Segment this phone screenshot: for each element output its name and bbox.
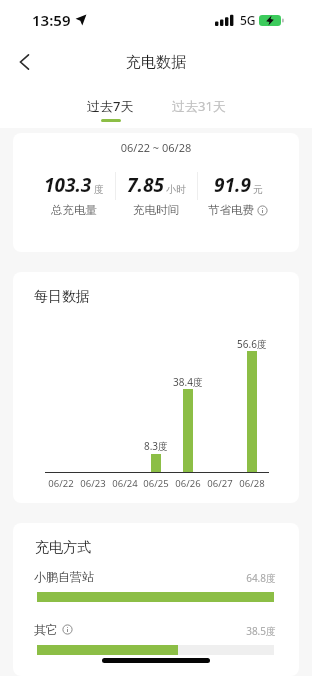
button[interactable]: 过去31天 [172,97,226,115]
staticText: 06/24 [109,477,141,490]
staticText: 06/26 [172,477,204,490]
staticText: 56.6度 [227,337,277,351]
staticText: 8.3度 [131,439,181,453]
staticText: 度 [94,183,104,196]
button[interactable] [0,40,44,84]
staticText: 充电时间 [133,203,179,217]
staticText: 7.85 [127,172,164,198]
staticText: 每日数据 [34,288,90,306]
staticText: 06/22 [45,477,77,490]
staticText: 38.5度 [216,624,276,638]
button[interactable]: 过去7天 [87,97,134,122]
staticText: 小鹏自营站 [34,569,94,584]
staticText: 06/25 [140,477,172,490]
staticText: 06/27 [204,477,236,490]
staticText: 38.4度 [163,375,213,389]
staticText: 过去7天 [87,97,134,115]
staticText: 元 [253,183,263,196]
staticText: 06/28 [236,477,268,490]
staticText: 其它 [34,622,58,637]
staticText: 总充电量 [51,203,97,217]
staticText: 64.8度 [216,571,276,585]
staticText: 充电方式 [35,539,91,557]
staticText: 节省电费 [208,203,254,217]
staticText: 5G [240,12,256,28]
staticText: 充电数据 [126,53,186,72]
staticText: 小时 [166,183,186,196]
staticText: 06/22 ~ 06/28 [13,140,299,155]
staticText: 91.9 [214,172,251,198]
staticText: 13:59 [32,10,71,30]
staticText: 103.3 [44,172,92,198]
staticText: 06/23 [77,477,109,490]
